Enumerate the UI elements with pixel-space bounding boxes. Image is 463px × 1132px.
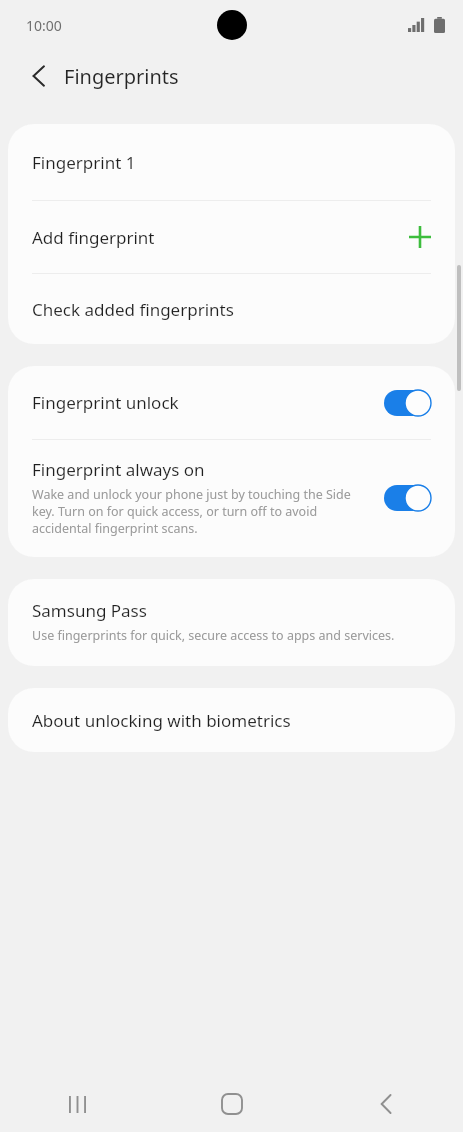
button[interactable]: Samsung Pass [8, 579, 455, 666]
button[interactable]: Home [155, 1076, 309, 1132]
button[interactable]: Fingerprint 1 [8, 124, 455, 200]
button[interactable]: About unlocking with biometrics [8, 688, 455, 752]
button[interactable]: Check added fingerprints [8, 274, 455, 344]
button[interactable]: Back [16, 54, 60, 98]
button[interactable]: Fingerprint unlock [8, 366, 455, 439]
staticText: Samsung Pass [32, 599, 147, 622]
staticText: 10:00 [26, 16, 62, 35]
button[interactable]: Recents [0, 1076, 155, 1132]
button[interactable]: Add fingerprint [8, 201, 455, 273]
staticText: Fingerprint unlock [32, 391, 384, 414]
staticText: Wake and unlock your phone just by touch… [32, 486, 370, 537]
button[interactable]: Toggle [384, 388, 432, 418]
button[interactable]: Back [309, 1076, 463, 1132]
button[interactable]: Fingerprint always on [8, 440, 455, 557]
staticText: Use fingerprints for quick, secure acces… [32, 627, 395, 644]
staticText: Add fingerprint [32, 226, 155, 249]
staticText: About unlocking with biometrics [32, 709, 291, 732]
staticText: Fingerprint 1 [32, 151, 136, 174]
staticText: Fingerprints [64, 63, 179, 90]
staticText: Fingerprint always on [32, 458, 205, 481]
staticText: Check added fingerprints [32, 298, 234, 321]
button[interactable]: Toggle [384, 483, 432, 513]
